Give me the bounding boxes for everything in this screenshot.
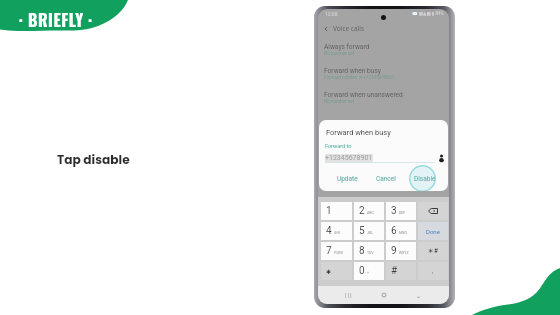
staticText: Forward number is +12345678901 [324, 75, 395, 80]
staticText: ✉ ■▲■ ▮ 84% [412, 11, 444, 16]
staticText: 0 [359, 265, 365, 277]
button[interactable]: 4 [321, 222, 352, 240]
button[interactable]: 7 [321, 242, 352, 260]
button[interactable]: 8 [354, 242, 384, 260]
button[interactable]: 9 [386, 242, 416, 260]
staticText: + [367, 271, 369, 275]
staticText: 9 [391, 245, 397, 257]
button[interactable]: # [386, 262, 416, 280]
button[interactable]: Always forward [318, 40, 449, 64]
staticText: 4 [326, 225, 332, 237]
staticText: 3 [391, 205, 397, 217]
button[interactable]: ✱ [321, 262, 352, 280]
staticText: MNO [399, 231, 407, 235]
button[interactable]: ∗# [418, 242, 448, 260]
button[interactable]: Update [334, 172, 361, 186]
staticText: Forward when unanswered [324, 91, 403, 99]
staticText: +12345678901 [325, 154, 373, 162]
staticText: 12:08 [325, 11, 339, 17]
button[interactable]: 5 [354, 222, 384, 240]
staticText: GHI [334, 231, 340, 235]
staticText: 6 [391, 225, 397, 237]
button[interactable]: 0 [354, 262, 384, 280]
staticText: 8 [359, 245, 365, 257]
staticText: ABC [367, 211, 374, 215]
staticText: ✱ [326, 268, 332, 275]
staticText: Done [426, 228, 440, 235]
staticText: Forward when busy [324, 67, 381, 75]
button[interactable]: Disable [411, 172, 439, 186]
button[interactable]: Back [318, 20, 449, 37]
staticText: 5 [359, 225, 365, 237]
staticText: 2 [359, 205, 365, 217]
staticText: Disable [414, 175, 436, 183]
other: Backspace [428, 206, 438, 216]
staticText: · BRIEFLY · [19, 8, 93, 32]
button[interactable]: 1 [321, 202, 352, 220]
staticText: ⌄ [416, 292, 422, 299]
staticText: Forward to [325, 143, 352, 149]
staticText: ∗# [428, 247, 439, 255]
staticText: Voice calls [333, 24, 365, 33]
staticText: ||| [344, 292, 353, 299]
staticText: TUV [367, 251, 374, 255]
button[interactable]: 6 [386, 222, 416, 240]
button[interactable]: Backspace [418, 202, 448, 220]
button[interactable]: Recents [343, 290, 353, 300]
button[interactable]: Done [418, 222, 448, 240]
staticText: Always forward [324, 43, 370, 51]
staticText: JKL [367, 231, 374, 235]
button[interactable]: Choose contact [438, 154, 445, 161]
staticText: PQRS [334, 251, 343, 255]
staticText: Cancel [376, 175, 396, 183]
staticText: DEF [399, 211, 406, 215]
staticText: , [432, 267, 434, 275]
button[interactable]: Cancel [373, 172, 399, 186]
staticText: No number set [324, 51, 355, 56]
staticText: WXYZ [399, 251, 409, 255]
staticText: No number set [324, 99, 355, 104]
button[interactable]: Home [379, 290, 389, 300]
staticText: Tap disable [57, 151, 130, 168]
button[interactable]: Forward when busy [318, 64, 449, 88]
button[interactable]: Back [414, 290, 424, 300]
button[interactable]: 3 [386, 202, 416, 220]
staticText: 1 [326, 205, 332, 217]
button[interactable]: Forward when unanswered [318, 88, 449, 112]
staticText: 7 [326, 245, 332, 257]
staticText: Forward when busy [326, 128, 391, 137]
staticText: # [391, 265, 398, 277]
other: Back [323, 26, 329, 32]
button[interactable]: 2 [354, 202, 384, 220]
staticText: Update [337, 175, 358, 183]
